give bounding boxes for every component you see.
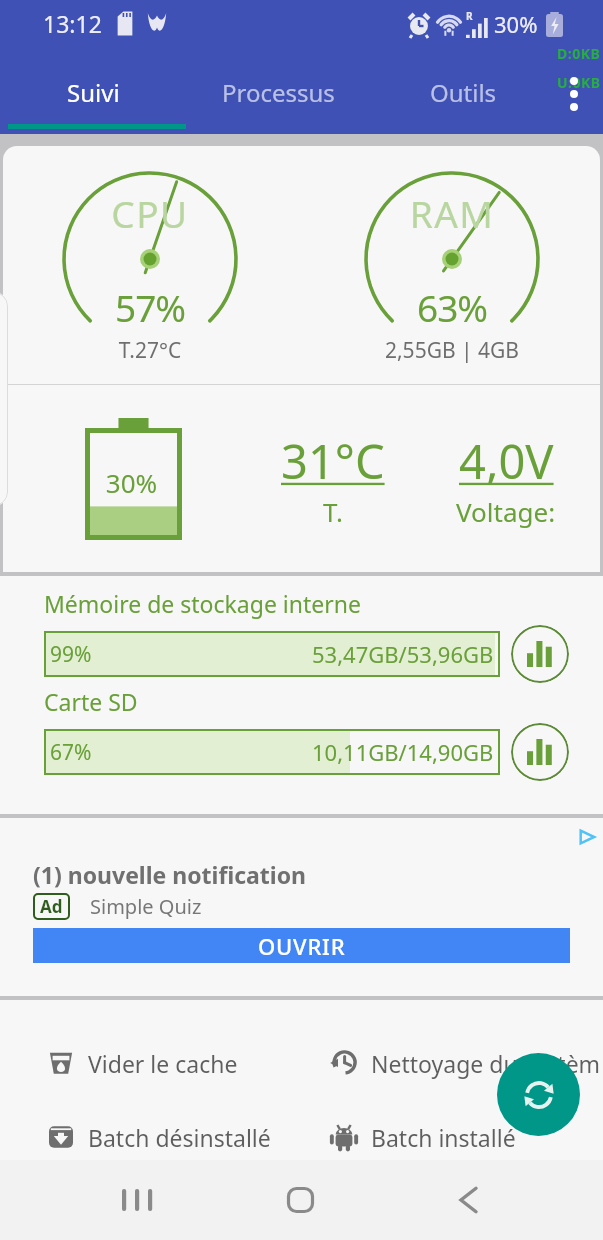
staticText: Batch installé [371, 1122, 516, 1153]
staticText: 10,11GB/14,90GB [312, 737, 494, 767]
button[interactable]: Refresh [497, 1053, 580, 1136]
staticText: Mémoire de stockage interne [44, 588, 361, 619]
staticText: U:0KB [557, 73, 601, 92]
button[interactable]: Back [435, 1160, 501, 1240]
button[interactable]: Batch installé [329, 1116, 516, 1158]
staticText: 67% [50, 738, 92, 767]
staticText: Suivi [67, 76, 120, 109]
staticText: T.27°C [58, 336, 242, 365]
staticText: (1) nouvelle notification [33, 859, 307, 890]
staticText: 99% [50, 640, 92, 669]
staticText: Ad [40, 895, 63, 918]
staticText: RAM [360, 188, 544, 238]
staticText: 13:12 [43, 8, 102, 39]
staticText: 4,0V [459, 429, 554, 493]
staticText: Nettoyage du systèm [371, 1048, 601, 1079]
staticText: 30% [494, 9, 538, 39]
staticText: Batch désinstallé [88, 1122, 271, 1153]
staticText: OUVRIR [258, 931, 346, 961]
staticText: 63% [360, 282, 544, 332]
staticText: CPU [58, 188, 242, 238]
staticText: 30% [83, 465, 180, 500]
staticText: Voltage: [456, 494, 556, 529]
button[interactable]: Suivi [0, 56, 186, 128]
staticText: Processus [222, 76, 335, 109]
button[interactable]: SD card details [511, 723, 569, 781]
staticText: Vider le cache [88, 1048, 238, 1079]
button[interactable]: Recent apps [103, 1160, 169, 1240]
staticText: Outils [430, 76, 497, 109]
staticText: R [466, 9, 473, 23]
button[interactable]: Nettoyage du systèm [329, 1042, 601, 1084]
button[interactable]: More options [570, 77, 579, 112]
button[interactable]: OUVRIR [33, 928, 570, 963]
staticText: Simple Quiz [90, 893, 202, 920]
button[interactable]: Batch désinstallé [46, 1116, 271, 1158]
button[interactable]: Outils [371, 56, 556, 128]
button[interactable]: 99% [44, 631, 500, 677]
button[interactable]: Ad info [576, 826, 598, 848]
button[interactable]: Internal storage details [511, 625, 569, 683]
staticText: 31°C [281, 429, 385, 493]
staticText: 2,55GB | 4GB [360, 336, 544, 365]
staticText: 57% [58, 282, 242, 332]
button[interactable]: Processus [186, 56, 371, 128]
staticText: D:0KB [557, 44, 601, 63]
staticText: T. [323, 494, 343, 529]
button[interactable]: Home [267, 1160, 333, 1240]
staticText: 53,47GB/53,96GB [312, 639, 494, 669]
button[interactable]: Vider le cache [46, 1042, 238, 1084]
button[interactable]: 67% [44, 729, 500, 775]
staticText: Carte SD [44, 686, 138, 717]
